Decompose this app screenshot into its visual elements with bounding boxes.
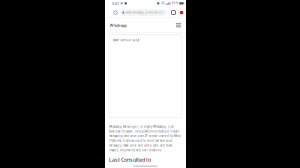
button[interactable]: Reload [111, 8, 120, 17]
staticText: Last Consulted to [109, 156, 151, 163]
staticText: 4G [161, 2, 165, 5]
staticText: · [154, 2, 155, 5]
button[interactable]: Address bar [120, 9, 167, 16]
staticText: www.whatsapp.com/features [125, 11, 162, 14]
staticText: 86% [172, 2, 178, 5]
button[interactable]: Tabs [169, 8, 177, 17]
button[interactable]: Menu [174, 21, 182, 29]
staticText: WhatsApp Messenger, or simply WhatsApp, … [109, 125, 180, 152]
staticText: Name without social [113, 38, 140, 42]
staticText: 9:41 [112, 1, 119, 6]
button[interactable]: Account [177, 8, 185, 17]
staticText: Whatsapp [109, 22, 126, 28]
